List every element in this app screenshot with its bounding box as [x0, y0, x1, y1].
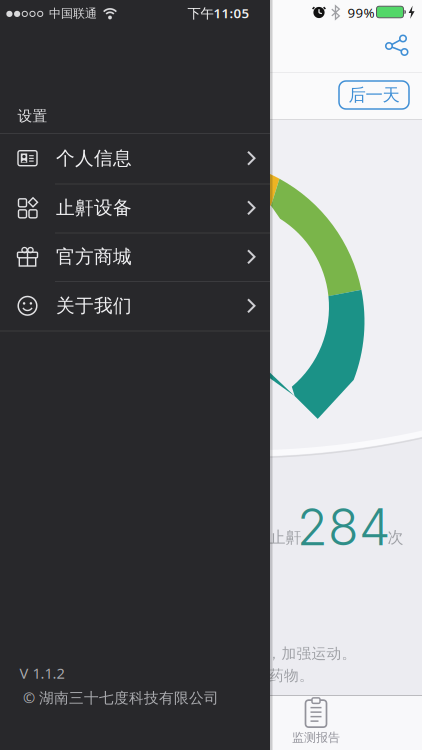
staticText: 监测报告	[292, 730, 340, 745]
staticText: 99%	[347, 4, 374, 21]
staticText: 下午11:05	[187, 4, 249, 22]
staticText: 个人信息	[56, 147, 132, 170]
staticText: 284	[297, 497, 390, 557]
button[interactable]: 监测报告	[256, 695, 376, 747]
staticText: V 1.1.2	[19, 663, 64, 683]
staticText: 止鼾	[269, 528, 301, 547]
staticText: 次	[387, 528, 403, 547]
button[interactable]: 止鼾设备	[0, 183, 270, 232]
staticText: 设置	[17, 107, 47, 125]
staticText: 止鼾设备	[56, 196, 132, 219]
staticText: 中国联通	[49, 6, 97, 21]
staticText: 后一天	[348, 84, 399, 106]
staticText: 请按医生处方服用药物。	[149, 666, 314, 684]
staticText: © 湖南三十七度科技有限公司	[23, 688, 219, 707]
button[interactable]: 分享	[379, 30, 413, 62]
staticText: 关于我们	[56, 294, 132, 317]
button[interactable]: 后一天	[339, 81, 409, 109]
button[interactable]: 关于我们	[0, 281, 270, 330]
staticText: 官方商城	[56, 245, 132, 268]
button[interactable]: 官方商城	[0, 232, 270, 281]
button[interactable]: 个人信息	[0, 134, 270, 183]
staticText: 养成良好睡眠习惯，加强运动。	[146, 644, 356, 662]
